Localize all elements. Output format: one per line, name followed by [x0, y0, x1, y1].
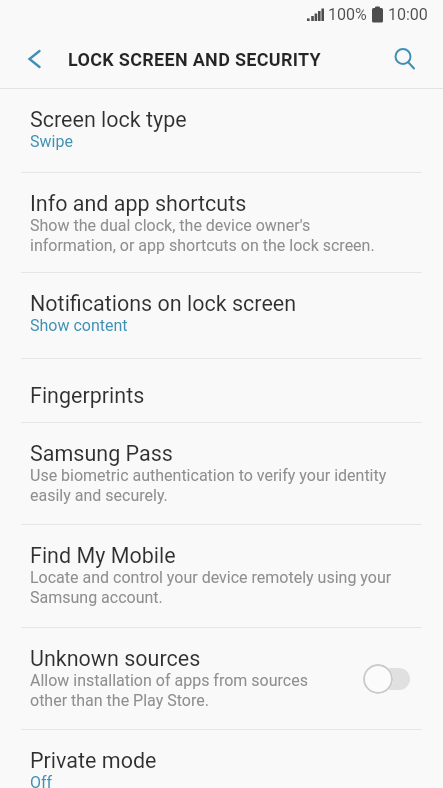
button[interactable]: Private mode: [0, 730, 443, 788]
staticText: Screen lock type: [30, 107, 187, 132]
button[interactable]: Notifications on lock screen: [0, 273, 443, 359]
staticText: Show the dual clock, the device owner's …: [30, 216, 375, 255]
staticText: Info and app shortcuts: [30, 191, 247, 216]
staticText: Allow installation of apps from sources …: [30, 671, 308, 710]
button[interactable]: [363, 664, 410, 694]
staticText: Show content: [30, 316, 128, 335]
staticText: Find My Mobile: [30, 543, 176, 568]
staticText: Off: [30, 773, 53, 788]
button[interactable]: Unknown sources: [0, 628, 443, 730]
staticText: Fingerprints: [30, 383, 145, 408]
staticText: 100%: [328, 5, 367, 24]
button[interactable]: Samsung Pass: [0, 423, 443, 525]
staticText: Use biometric authentication to verify y…: [30, 466, 387, 505]
staticText: Samsung Pass: [30, 441, 173, 466]
staticText: 10:00: [388, 5, 428, 24]
button[interactable]: [20, 45, 48, 73]
button[interactable]: Info and app shortcuts: [0, 173, 443, 273]
staticText: Locate and control your device remotely …: [30, 568, 392, 607]
button[interactable]: [391, 45, 419, 73]
button[interactable]: Fingerprints: [0, 359, 443, 423]
button[interactable]: Screen lock type: [0, 89, 443, 173]
button[interactable]: Find My Mobile: [0, 525, 443, 628]
staticText: Unknown sources: [30, 646, 201, 671]
staticText: LOCK SCREEN AND SECURITY: [68, 49, 322, 70]
staticText: Notifications on lock screen: [30, 291, 297, 316]
staticText: Swipe: [30, 132, 73, 151]
staticText: Private mode: [30, 748, 157, 773]
